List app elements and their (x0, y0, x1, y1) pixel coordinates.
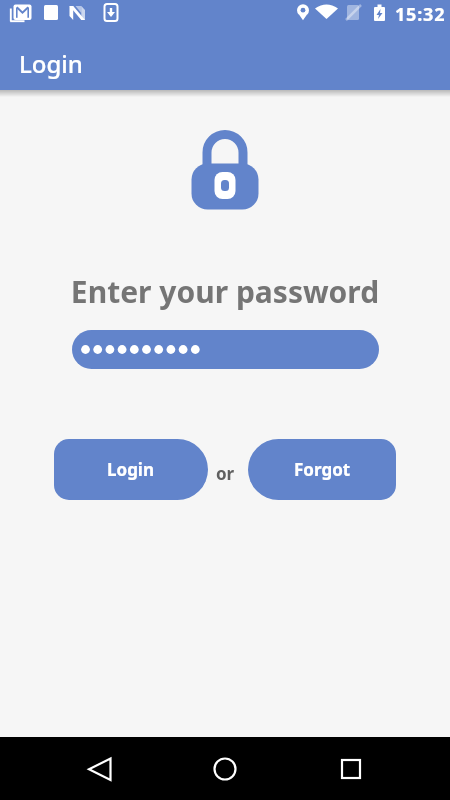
staticText: Login (19, 47, 83, 80)
staticText: Forgot (294, 458, 351, 481)
button[interactable] (326, 744, 376, 794)
staticText: or (0, 462, 450, 485)
button[interactable] (72, 330, 379, 369)
staticText: Enter your password (0, 271, 450, 312)
button[interactable]: Login (54, 439, 208, 500)
button[interactable]: Forgot (248, 439, 396, 500)
button[interactable] (75, 744, 125, 794)
staticText: Login (107, 458, 155, 481)
staticText: 15:32 (395, 2, 446, 27)
button[interactable] (200, 744, 250, 794)
